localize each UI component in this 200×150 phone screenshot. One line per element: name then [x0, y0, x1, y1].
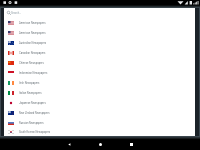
- staticText: American Newspapers: [19, 32, 46, 35]
- button[interactable]: Irish Newspapers: [4, 78, 195, 88]
- button[interactable]: Search...: [4, 8, 195, 18]
- staticText: American Newspapers: [19, 22, 46, 25]
- button[interactable]: Chinese Newspapers: [4, 58, 195, 68]
- button[interactable]: Russian Newspapers: [4, 118, 195, 128]
- staticText: Italian Newspapers: [19, 92, 42, 95]
- button[interactable]: Recent apps: [116, 139, 147, 150]
- staticText: Japanese Newspapers: [19, 102, 46, 105]
- button[interactable]: Canadian Newspapers: [4, 48, 195, 58]
- staticText: Russian Newspapers: [19, 122, 44, 125]
- button[interactable]: New Zealand Newspapers: [4, 108, 195, 118]
- button[interactable]: American Newspapers: [4, 28, 195, 38]
- button[interactable]: Home: [85, 139, 116, 150]
- button[interactable]: American Newspapers: [4, 18, 195, 28]
- button[interactable]: Italian Newspapers: [4, 88, 195, 98]
- staticText: Indonesian Newspapers: [19, 72, 48, 75]
- button[interactable]: Australian Newspapers: [4, 38, 195, 48]
- button[interactable]: Indonesian Newspapers: [4, 68, 195, 78]
- staticText: Chinese Newspapers: [19, 62, 44, 65]
- button[interactable]: Japanese Newspapers: [4, 98, 195, 108]
- staticText: South Korean Newspapers: [19, 131, 51, 134]
- staticText: Irish Newspapers: [19, 82, 40, 85]
- staticText: Canadian Newspapers: [19, 52, 46, 55]
- staticText: Search...: [11, 12, 22, 15]
- button[interactable]: South Korean Newspapers: [4, 128, 195, 136]
- staticText: Australian Newspapers: [19, 42, 47, 45]
- button[interactable]: Back: [54, 139, 85, 150]
- staticText: New Zealand Newspapers: [19, 112, 50, 115]
